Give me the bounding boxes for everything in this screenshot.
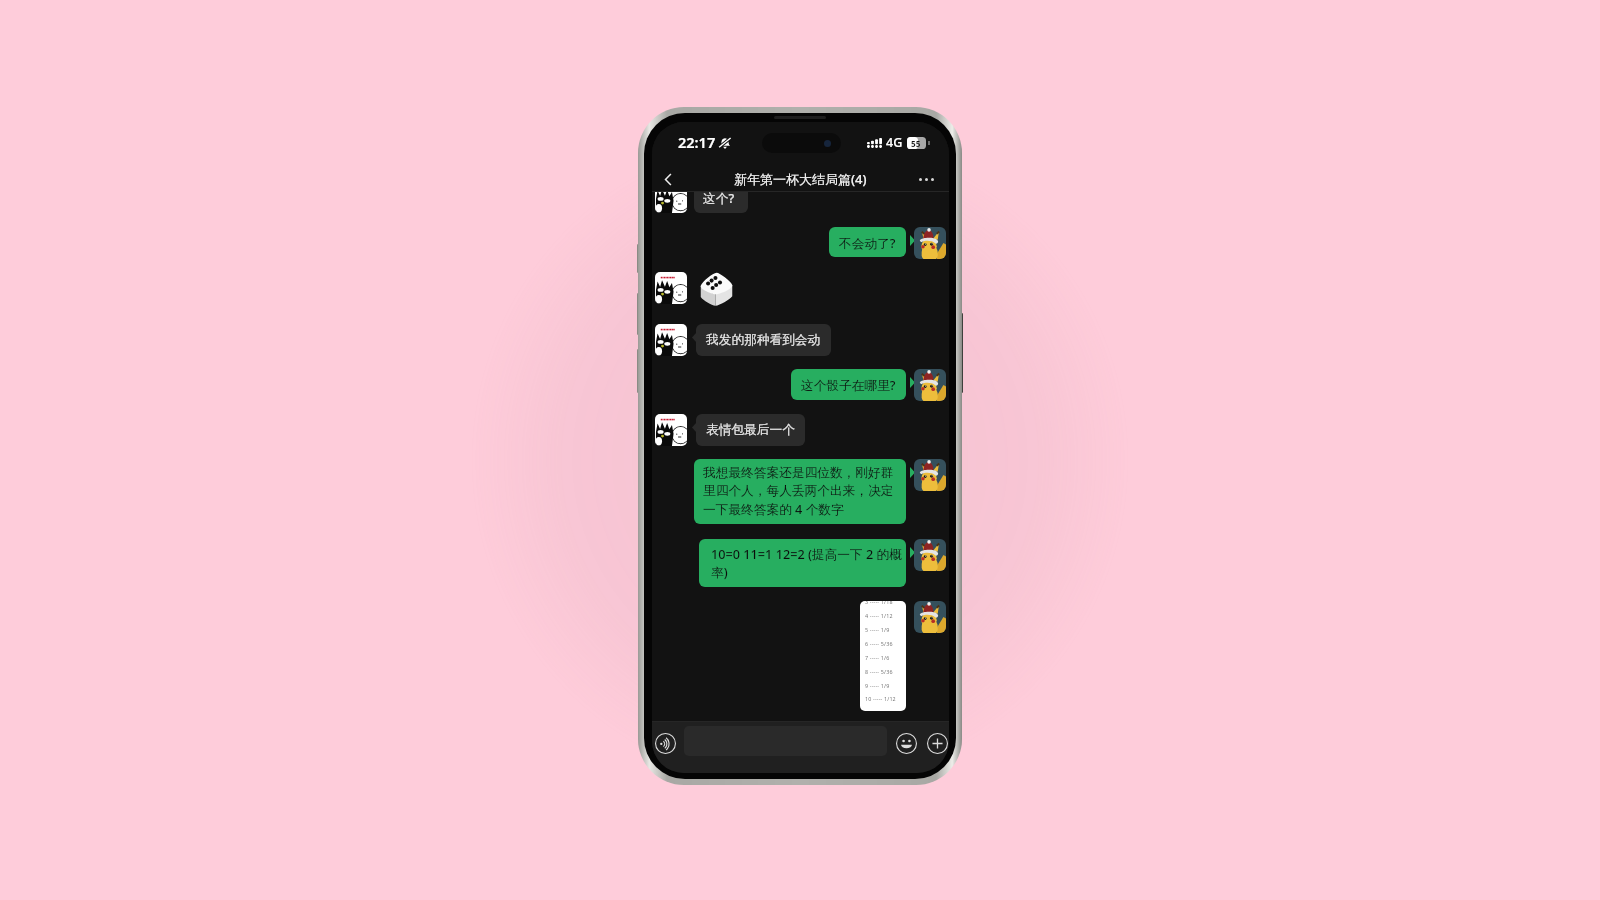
- button[interactable]: Dice sticker: [699, 271, 734, 308]
- button[interactable]: 这个?: [694, 181, 748, 213]
- button[interactable]: Emoji: [892, 729, 920, 757]
- button[interactable]: 我想最终答案还是四位数，刚好群里四个人，每人丢两个出来，决定一下最终答案的 4 …: [694, 459, 906, 524]
- button[interactable]: Contact avatar: [655, 324, 687, 356]
- button[interactable]: 表情包最后一个: [696, 414, 805, 446]
- staticText: 4G: [886, 134, 903, 151]
- staticText: 10=0 11=1 12=2 (提高一下 2 的概率): [711, 545, 903, 581]
- button[interactable]: My avatar: [914, 227, 946, 259]
- button[interactable]: More options: [923, 729, 949, 757]
- staticText: 这个?: [703, 189, 735, 206]
- button[interactable]: Contact avatar: [655, 272, 687, 304]
- button[interactable]: Contact avatar: [655, 181, 687, 213]
- button[interactable]: 我发的那种看到会动: [696, 324, 831, 356]
- staticText: 5 ----- 1/9: [865, 626, 890, 633]
- staticText: 9 ----- 1/9: [865, 682, 890, 689]
- staticText: 22:17: [678, 132, 716, 152]
- staticText: 这个骰子在哪里?: [801, 376, 896, 393]
- button[interactable]: Probability table image: [860, 601, 906, 711]
- button[interactable]: Voice message: [652, 729, 679, 757]
- staticText: 我发的那种看到会动: [706, 332, 821, 348]
- staticText: 6 ----- 5/36: [865, 640, 893, 647]
- staticText: 3 ----- 1/18: [865, 601, 893, 605]
- button[interactable]: Back: [652, 166, 684, 192]
- button[interactable]: 不会动了?: [829, 227, 906, 257]
- staticText: 不会动了?: [839, 234, 896, 251]
- button[interactable]: More: [912, 166, 940, 192]
- button[interactable]: Contact avatar: [655, 414, 687, 446]
- staticText: 7 ----- 1/6: [865, 654, 890, 661]
- staticText: 10 ----- 1/12: [865, 695, 896, 702]
- staticText: 表情包最后一个: [706, 422, 795, 438]
- staticText: 4 ----- 1/12: [865, 612, 893, 619]
- staticText: 我想最终答案还是四位数，刚好群里四个人，每人丢两个出来，决定一下最终答案的 4 …: [703, 465, 897, 518]
- staticText: 新年第一杯大结局篇(4): [734, 170, 867, 188]
- button[interactable]: My avatar: [914, 459, 946, 491]
- button[interactable]: 这个骰子在哪里?: [791, 369, 906, 400]
- button[interactable]: My avatar: [914, 601, 946, 633]
- button[interactable]: My avatar: [914, 369, 946, 401]
- button[interactable]: My avatar: [914, 539, 946, 571]
- staticText: 55: [911, 138, 921, 149]
- staticText: 8 ----- 5/36: [865, 668, 893, 675]
- button[interactable]: 10=0 11=1 12=2 (提高一下 2 的概率): [699, 539, 906, 587]
